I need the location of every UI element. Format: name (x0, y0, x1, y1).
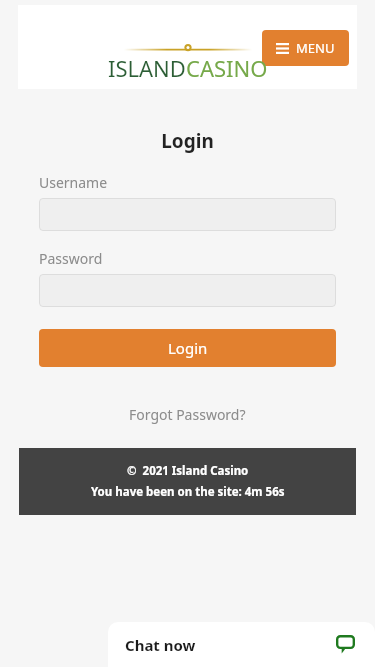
staticText: ISLAND (108, 53, 186, 83)
staticText: Password (39, 249, 103, 268)
staticText: Chat now (125, 635, 196, 655)
staticText: Login (168, 338, 208, 358)
staticText: CASINO (186, 53, 268, 83)
staticText: MENU (296, 39, 335, 57)
button[interactable] (39, 274, 336, 307)
button[interactable]: MENU (262, 30, 349, 66)
button[interactable]: Forgot Password? (123, 399, 252, 430)
button[interactable]: Login (39, 329, 336, 367)
staticText: Forgot Password? (129, 405, 246, 424)
button[interactable] (39, 198, 336, 231)
button[interactable]: Chat now (108, 622, 375, 667)
staticText: Username (39, 173, 108, 192)
other: Open chat (336, 635, 355, 654)
staticText: Login (0, 128, 375, 154)
staticText: © 2021 Island Casino (127, 463, 249, 479)
staticText: You have been on the site: 4m 56s (91, 484, 285, 500)
